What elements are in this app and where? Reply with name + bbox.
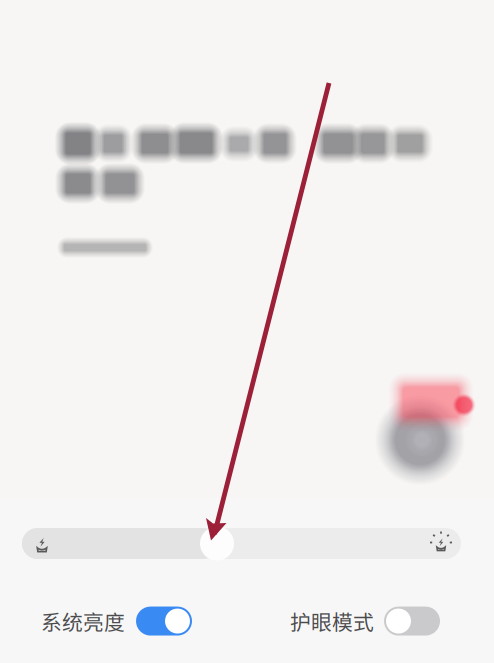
staticText: 护眼模式	[290, 606, 374, 636]
button[interactable]: Increase brightness	[426, 528, 456, 558]
button[interactable]: Decrease brightness	[27, 528, 57, 558]
button[interactable]: 系统亮度	[41, 606, 192, 636]
button[interactable]: 护眼模式	[290, 606, 440, 636]
staticText: 系统亮度	[41, 606, 125, 636]
